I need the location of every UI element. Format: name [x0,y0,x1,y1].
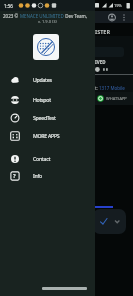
staticText: 19% [114,3,122,8]
staticText: SpeedTest [33,114,56,121]
staticText: 1:56 [4,3,13,9]
staticText: Dev Team, [64,13,88,19]
staticText: Updates [33,76,52,83]
staticText: Hotspot [33,96,51,103]
staticText: IVED [95,59,106,65]
button[interactable]: SpeedTest [8,111,92,124]
button[interactable]: ? [8,169,92,182]
button[interactable]: Updates [8,73,92,86]
staticText: MENACE UNLIMITED [20,13,64,19]
staticText: v. 1.9.0 (3) [38,19,57,24]
staticText: t: [95,85,100,91]
staticText: ? [13,172,16,179]
button[interactable]: Contact [8,152,92,165]
button[interactable] [93,209,126,234]
staticText: 1317 Mobile [99,85,125,91]
button[interactable]: MORE APPS [8,129,92,142]
staticText: 2023 © [3,13,20,19]
button[interactable] [33,34,59,60]
button[interactable]: Hotspot [8,93,92,106]
button[interactable] [95,92,133,105]
staticText: MORE APPS [33,132,60,139]
staticText: WHATSAPP [106,96,127,101]
staticText: Contact [33,155,51,162]
staticText: Info [33,172,42,179]
staticText: ISTER [95,28,111,35]
